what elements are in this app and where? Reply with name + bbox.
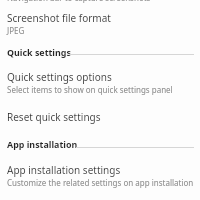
button[interactable]: [0, 0, 200, 4]
button[interactable]: Reset quick settings: [0, 104, 200, 132]
staticText: Screenshot file format: [7, 11, 111, 25]
staticText: Quick settings: [7, 46, 71, 58]
staticText: Select items to show on quick settings p…: [7, 84, 173, 95]
staticText: App installation: [7, 138, 78, 150]
button[interactable]: App installation: [0, 132, 200, 154]
button[interactable]: Quick settings options: [0, 64, 200, 100]
staticText: App installation settings: [7, 163, 121, 177]
button[interactable]: Screenshot file format: [0, 5, 200, 39]
button[interactable]: Quick settings: [0, 40, 200, 62]
staticText: Quick settings options: [7, 70, 112, 84]
staticText: Reset quick settings: [7, 110, 101, 124]
staticText: Navigation bar to capture screenshots: [7, 0, 151, 3]
staticText: Customize the related settings on app in…: [7, 177, 194, 188]
button[interactable]: App installation settings: [0, 157, 200, 195]
staticText: JPEG: [7, 25, 25, 36]
